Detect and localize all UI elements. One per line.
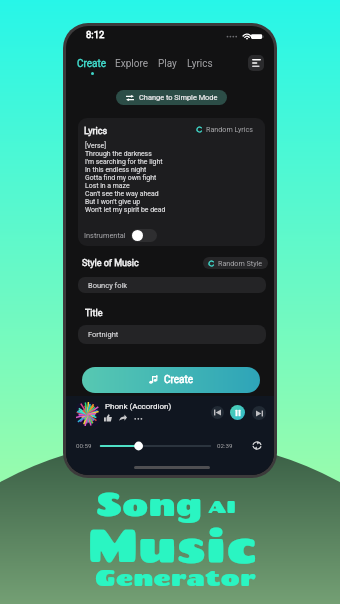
staticText: Fortnight [88,330,119,339]
staticText: [Verse] [85,142,107,150]
staticText: Instrumental [84,231,126,240]
staticText: Lost in a maze [85,182,130,190]
staticText: Bouncy folk [88,281,128,290]
button[interactable]: Menu [248,55,264,71]
staticText: Title [85,308,103,319]
staticText: Random Style [218,259,263,267]
staticText: Create [77,58,107,70]
button[interactable]: Repeat [252,441,262,450]
button[interactable]: Random Style [203,257,268,269]
staticText: Lyrics [84,126,108,137]
staticText: In this endless night [85,166,147,174]
staticText: Create [164,374,194,386]
button[interactable]: Bouncy folk [78,277,266,293]
button[interactable]: Previous [211,406,224,419]
staticText: Can't see the way ahead [85,190,159,198]
staticText: Generator [95,563,256,591]
staticText: Music [88,517,257,571]
button[interactable]: Lyrics [187,58,213,70]
staticText: 00:59 [76,442,92,449]
staticText: Change to Simple Mode [139,93,218,102]
button[interactable]: Play [158,58,177,70]
staticText: Random Lyrics [206,125,254,133]
button[interactable]: Create [77,58,107,75]
staticText: AI [208,496,236,517]
staticText: 8:12 [86,29,105,40]
staticText: Song [96,484,203,523]
button[interactable]: Instrumental [131,229,157,242]
button[interactable]: Next [252,406,266,420]
staticText: But I won't give up [85,198,141,206]
button[interactable]: Random Lyrics [196,125,254,133]
button[interactable]: More [134,414,143,422]
staticText: Through the darkness [85,150,152,158]
button[interactable]: Change to Simple Mode [116,90,227,105]
button[interactable]: Like [104,414,112,422]
button[interactable]: Create [82,367,260,393]
button[interactable]: Fortnight [78,325,266,344]
staticText: Gotta find my own fight [85,174,157,182]
staticText: I'm searching for the light [85,158,163,166]
button[interactable]: Pause [230,405,245,420]
staticText: 02:39 [217,442,233,449]
staticText: Phonk (Accordion) [105,402,172,411]
button[interactable]: Share [119,414,127,422]
button[interactable]: Explore [115,58,148,70]
staticText: Style of Music [82,258,139,269]
staticText: Won't let my spirit be dead [85,206,166,214]
